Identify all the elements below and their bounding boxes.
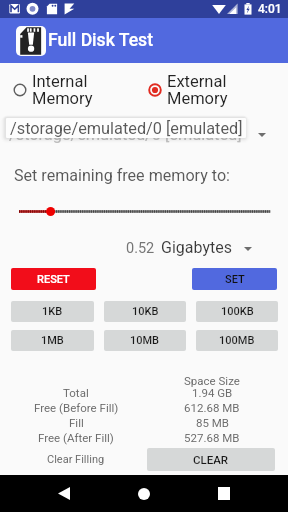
staticText: 612.68 MB: [184, 401, 240, 414]
button[interactable]: Select unit: [233, 241, 263, 257]
button[interactable]: Internal Memory: [13, 72, 144, 108]
staticText: 10KB: [132, 305, 159, 318]
button[interactable]: 100MB: [196, 330, 278, 351]
staticText: Fill: [69, 416, 84, 429]
staticText: /storage/emulated/0 [emulated]: [9, 125, 242, 144]
button[interactable]: SET: [192, 268, 277, 290]
button[interactable]: RESET: [11, 268, 96, 290]
staticText: 527.68 MB: [184, 431, 240, 444]
button[interactable]: /storage/emulated/0 [emulated]: [6, 118, 246, 138]
staticText: Full Disk Test: [48, 30, 154, 51]
staticText: 1MB: [41, 334, 64, 347]
staticText: RESET: [37, 273, 70, 286]
staticText: 100MB: [219, 334, 255, 347]
button[interactable]: [0, 204, 288, 220]
button[interactable]: 10MB: [104, 330, 186, 351]
button[interactable]: Recent apps: [194, 475, 254, 512]
button[interactable]: Home: [114, 475, 174, 512]
staticText: Free (After Fill): [38, 431, 114, 444]
button[interactable]: Back: [34, 475, 94, 512]
staticText: 100KB: [221, 305, 254, 318]
button[interactable]: External Memory: [148, 72, 288, 108]
staticText: /storage/emulated/0 [emulated]: [10, 119, 243, 138]
staticText: 0.52: [126, 240, 155, 257]
button[interactable]: 1MB: [11, 330, 94, 351]
staticText: 4:01: [258, 2, 282, 16]
staticText: Total: [63, 386, 89, 399]
staticText: SET: [225, 273, 245, 286]
button[interactable]: 1KB: [11, 301, 94, 322]
staticText: Free (Before Fill): [34, 401, 119, 414]
button[interactable]: CLEAR: [147, 448, 275, 471]
staticText: 1.94 GB: [192, 386, 233, 399]
staticText: Space Size: [184, 374, 240, 387]
staticText: 10MB: [130, 334, 160, 347]
staticText: External Memory: [167, 72, 228, 108]
button[interactable]: Clear Filling: [0, 448, 152, 471]
staticText: 85 MB: [196, 416, 229, 429]
staticText: Gigabytes: [161, 238, 232, 257]
button[interactable]: Select storage: [248, 125, 276, 145]
button[interactable]: 10KB: [104, 301, 186, 322]
staticText: Set remaining free memory to:: [14, 166, 230, 185]
staticText: Internal Memory: [32, 72, 93, 108]
staticText: CLEAR: [193, 453, 229, 466]
staticText: 1KB: [42, 305, 63, 318]
button[interactable]: 100KB: [196, 301, 278, 322]
staticText: Clear Filling: [47, 453, 105, 466]
